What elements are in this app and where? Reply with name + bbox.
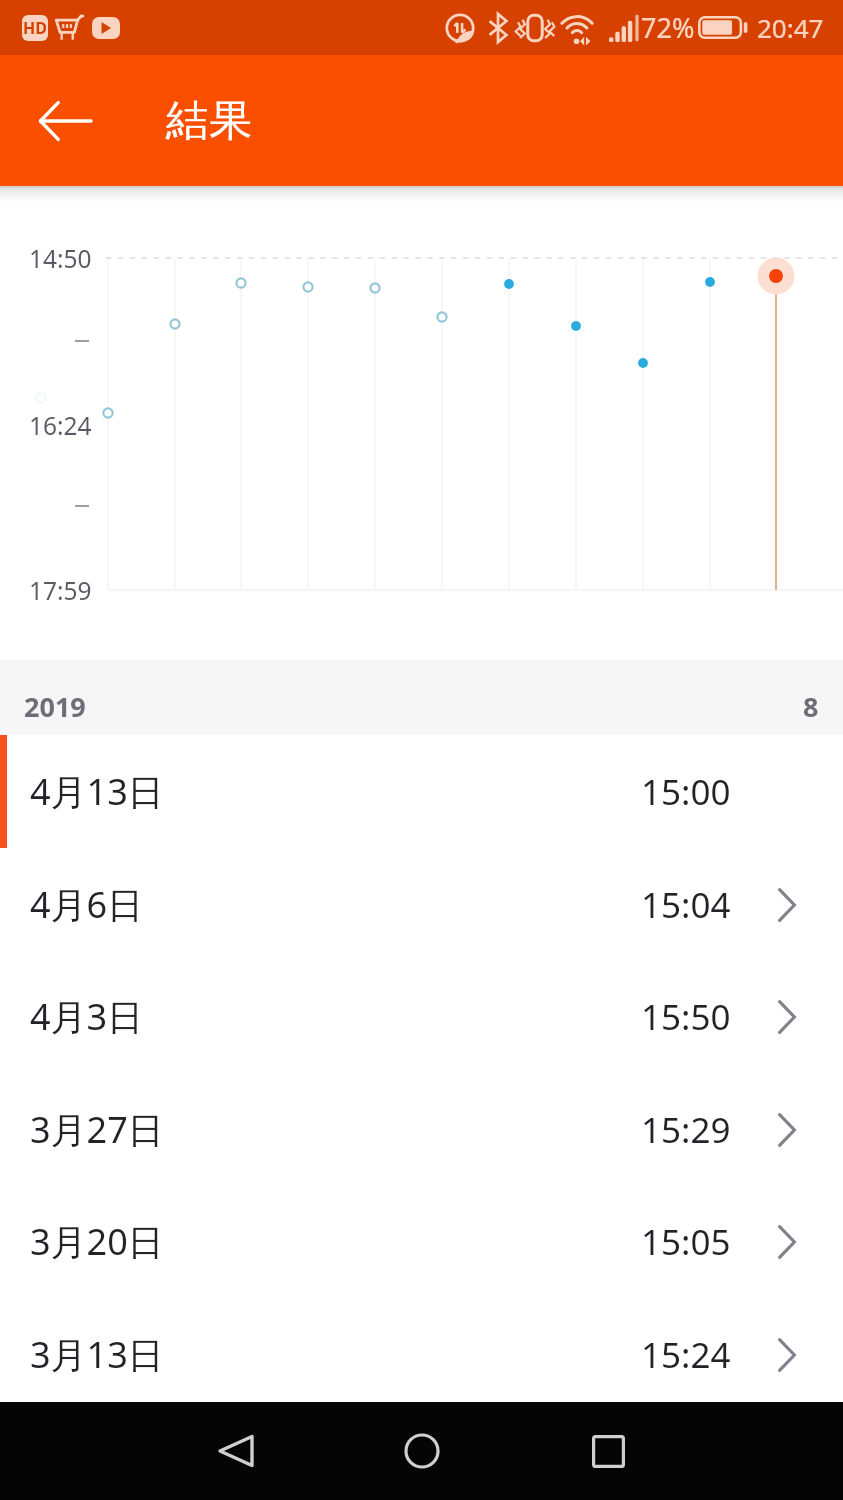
staticText: 15:29 [641,1106,731,1154]
button[interactable]: Back [29,85,101,157]
button[interactable]: Open details [770,1335,804,1375]
button[interactable]: Recent apps [572,1415,644,1487]
button[interactable]: 3月20日 [0,1185,843,1298]
staticText: 15:05 [641,1218,731,1266]
button[interactable]: 4月13日 [0,735,843,848]
button[interactable]: Open details [770,885,804,925]
button[interactable]: Open details [770,1222,804,1262]
button[interactable]: Open details [770,1110,804,1150]
staticText: 16:24 [29,409,92,442]
staticText: 3月20日 [30,1217,164,1266]
button[interactable]: 3月27日 [0,1073,843,1186]
staticText: 3月27日 [30,1105,164,1154]
staticText: 4月13日 [30,767,164,816]
staticText: 2019 [24,688,86,725]
button[interactable]: Back [200,1415,272,1487]
staticText: 20:47 [757,10,824,45]
staticText: 17:59 [29,574,92,607]
staticText: 15:24 [641,1331,731,1379]
staticText: 15:50 [641,993,731,1041]
button[interactable]: Open details [770,997,804,1037]
staticText: 72% [641,9,695,46]
staticText: 4月6日 [30,880,144,929]
button[interactable]: Home [386,1415,458,1487]
staticText: 8 [803,688,819,725]
staticText: HD [23,17,47,39]
button[interactable]: 4月6日 [0,848,843,961]
staticText: 3月13日 [30,1330,164,1379]
button[interactable]: 3月13日 [0,1298,843,1411]
staticText: 15:04 [641,881,731,929]
staticText: 15:00 [641,768,731,816]
button[interactable]: 4月3日 [0,960,843,1073]
staticText: 4月3日 [30,992,144,1041]
staticText: 14:50 [29,242,92,275]
staticText: 結果 [166,94,252,148]
